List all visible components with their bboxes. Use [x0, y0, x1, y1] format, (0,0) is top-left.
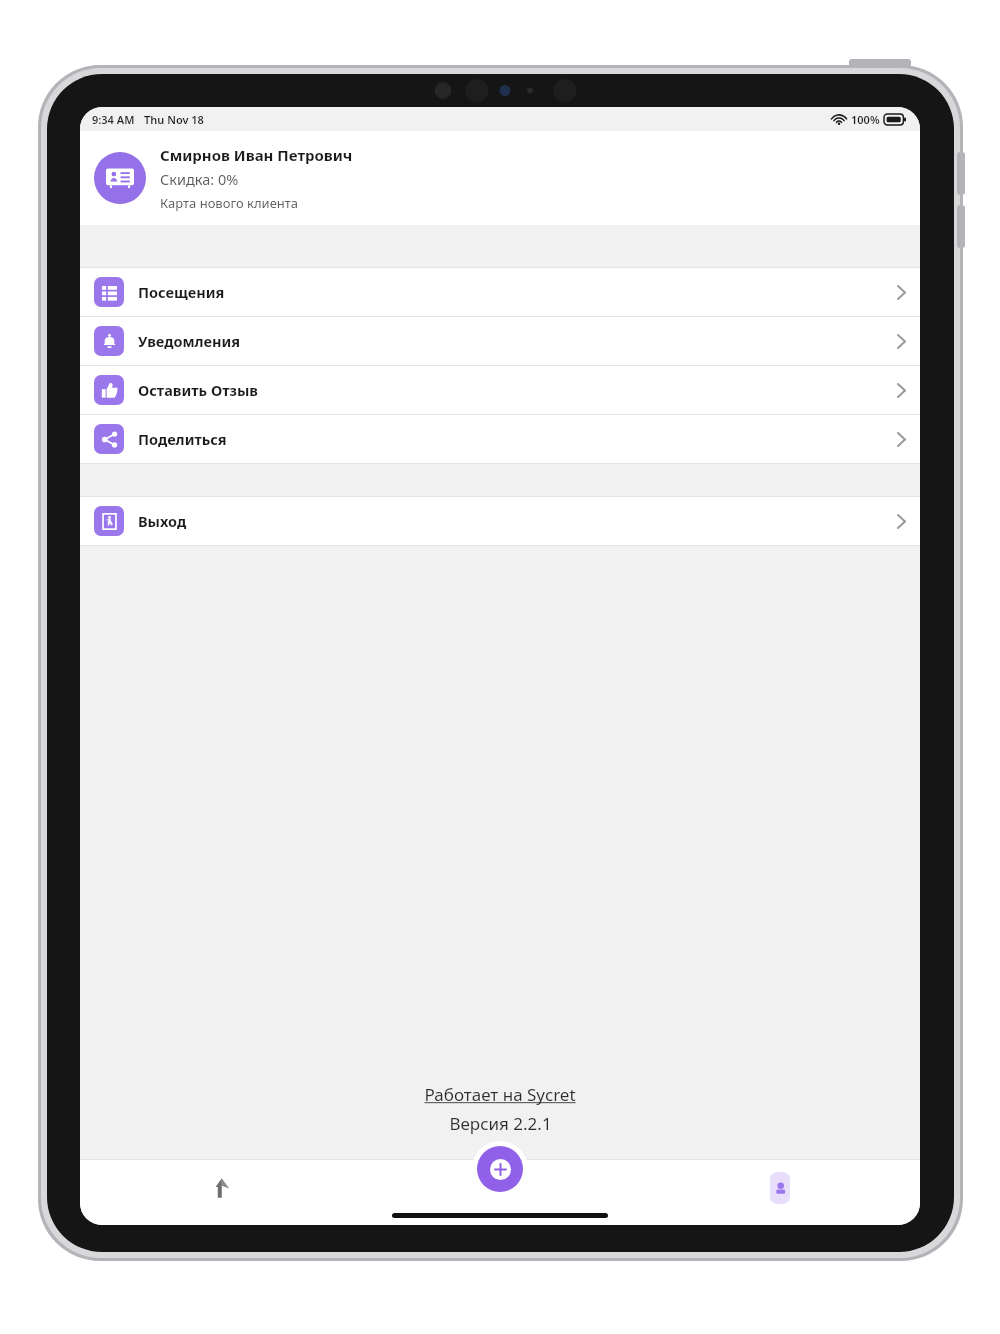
staticText: Карта нового клиента — [160, 194, 299, 212]
button[interactable]: Уведомления — [80, 317, 920, 365]
button[interactable]: Посещения — [80, 268, 920, 316]
staticText: Версия 2.2.1 — [449, 1112, 552, 1135]
button[interactable]: Добавить — [477, 1146, 523, 1192]
staticText: 9:34 AM — [92, 112, 135, 127]
button[interactable]: Выход — [80, 497, 920, 545]
button[interactable]: Смирнов Иван Петрович — [80, 131, 920, 225]
staticText: Посещения — [138, 282, 225, 302]
staticText: Выход — [138, 511, 187, 531]
button[interactable]: Профиль — [640, 1159, 920, 1225]
staticText: Уведомления — [138, 331, 241, 351]
button[interactable]: Поделиться — [80, 415, 920, 463]
button[interactable]: Оставить Отзыв — [80, 366, 920, 414]
staticText: Оставить Отзыв — [138, 380, 258, 400]
staticText: Thu Nov 18 — [144, 112, 204, 127]
staticText: Поделиться — [138, 429, 227, 449]
staticText: Скидка: 0% — [160, 169, 239, 189]
staticText: 100% — [851, 112, 880, 127]
staticText: Работает на Sycret — [424, 1083, 576, 1106]
staticText: Смирнов Иван Петрович — [160, 145, 353, 165]
button[interactable]: Навигация — [80, 1159, 360, 1225]
